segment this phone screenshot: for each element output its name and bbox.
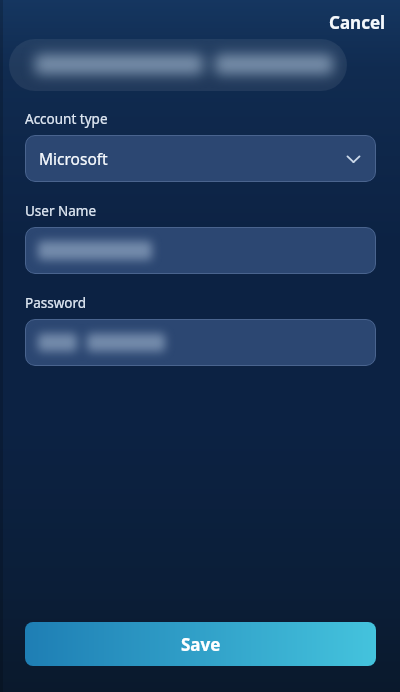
button[interactable]: Save [25,622,376,666]
other: Open account type list [346,151,361,166]
staticText: Cancel [329,11,386,34]
button[interactable]: Cancel [319,2,396,43]
staticText: Save [181,633,221,656]
staticText: Microsoft [39,148,108,169]
button[interactable] [25,227,376,274]
staticText: Password [25,294,87,312]
button[interactable] [25,319,376,366]
staticText: User Name [25,202,97,220]
button[interactable]: Microsoft [25,135,376,182]
staticText: Account type [25,110,108,128]
